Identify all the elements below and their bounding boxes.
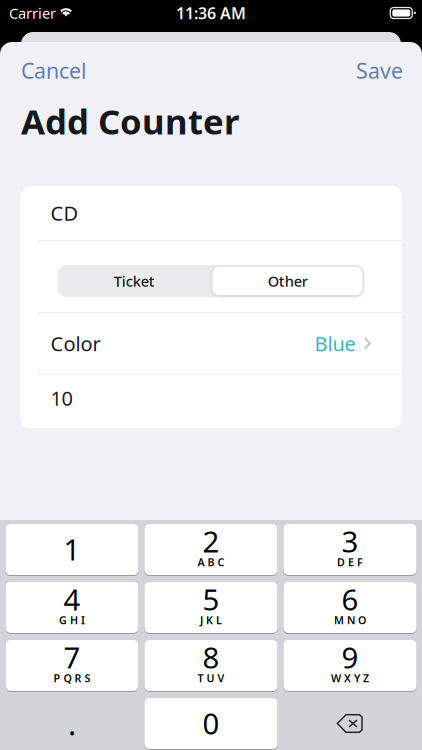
- staticText: Ticket: [114, 271, 155, 291]
- button[interactable]: 8: [144, 640, 277, 691]
- staticText: J K L: [200, 613, 222, 627]
- staticText: Add Counter: [21, 98, 239, 144]
- button[interactable]: Cancel: [0, 42, 108, 99]
- button[interactable]: 6: [283, 582, 416, 633]
- staticText: Blue: [314, 330, 355, 357]
- staticText: 9: [341, 637, 358, 676]
- staticText: 8: [202, 637, 219, 676]
- button[interactable]: 2: [144, 524, 277, 575]
- staticText: CD: [50, 200, 78, 226]
- button[interactable]: 3: [283, 524, 416, 575]
- button[interactable]: 7: [5, 640, 138, 691]
- staticText: G H I: [59, 613, 85, 627]
- button[interactable]: 5: [144, 582, 277, 633]
- button[interactable]: Other: [211, 265, 364, 297]
- staticText: Cancel: [21, 56, 87, 85]
- staticText: 6: [341, 579, 358, 618]
- staticText: M N O: [334, 613, 366, 627]
- button[interactable]: 4: [5, 582, 138, 633]
- staticText: 3: [341, 521, 358, 560]
- staticText: 0: [202, 703, 219, 742]
- staticText: 4: [63, 579, 80, 618]
- button[interactable]: Ticket: [57, 265, 211, 297]
- staticText: 7: [63, 637, 80, 676]
- button[interactable]: 1: [5, 524, 138, 575]
- staticText: 2: [202, 521, 219, 560]
- staticText: Color: [50, 330, 100, 357]
- staticText: .: [68, 703, 76, 744]
- staticText: D E F: [337, 555, 363, 569]
- staticText: Other: [268, 271, 308, 291]
- staticText: 1: [63, 529, 80, 568]
- staticText: Save: [356, 56, 403, 85]
- button[interactable]: Save: [337, 42, 422, 99]
- button[interactable]: 0: [144, 698, 277, 749]
- button[interactable]: 9: [283, 640, 416, 691]
- staticText: W X Y Z: [331, 671, 369, 685]
- staticText: Carrier: [9, 3, 56, 23]
- button[interactable]: Delete: [283, 698, 416, 749]
- button[interactable]: .: [5, 698, 138, 749]
- staticText: P Q R S: [53, 671, 90, 685]
- staticText: 5: [202, 579, 219, 618]
- staticText: T U V: [197, 671, 224, 685]
- staticText: 11:36 AM: [176, 2, 246, 24]
- button[interactable]: Color: [20, 313, 401, 374]
- staticText: 10: [50, 385, 72, 411]
- staticText: A B C: [197, 555, 224, 569]
